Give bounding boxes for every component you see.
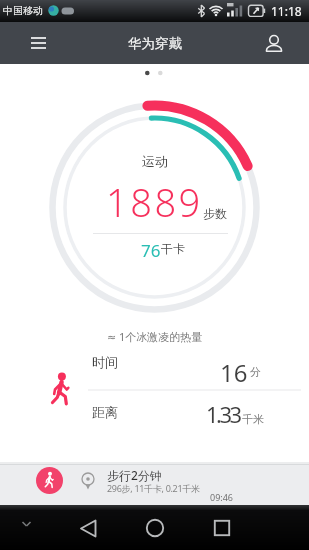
staticText: 时间 (92, 354, 118, 370)
staticText: 分 (250, 365, 261, 379)
staticText: 距离 (92, 404, 118, 420)
staticText: 296步, 11千卡, 0.21千米 (107, 482, 200, 494)
button[interactable]: 距离 (0, 391, 309, 435)
button[interactable]: 步行2分钟 (0, 464, 309, 505)
button[interactable] (16, 22, 60, 64)
staticText: 16 (220, 356, 248, 389)
staticText: 步数 (203, 206, 227, 221)
staticText: 1.33 (206, 399, 240, 429)
staticText: 1889 (106, 176, 203, 228)
staticText: 千米 (242, 412, 264, 426)
staticText: 华为穿戴 (128, 35, 182, 52)
button[interactable] (133, 512, 177, 544)
button[interactable]: 时间 (0, 346, 309, 390)
button[interactable] (200, 512, 244, 544)
staticText: 76 (141, 239, 161, 262)
staticText: 11:18 (271, 3, 302, 19)
staticText: 干卡 (161, 241, 185, 256)
staticText: 中国移动 (3, 4, 43, 17)
staticText: 09:46 (210, 491, 234, 503)
button[interactable] (253, 22, 295, 64)
staticText: 步行2分钟 (107, 467, 162, 483)
button[interactable] (66, 512, 110, 544)
staticText: 运动 (142, 153, 168, 169)
staticText: ≈ 1个冰激凌的热量 (107, 329, 203, 344)
